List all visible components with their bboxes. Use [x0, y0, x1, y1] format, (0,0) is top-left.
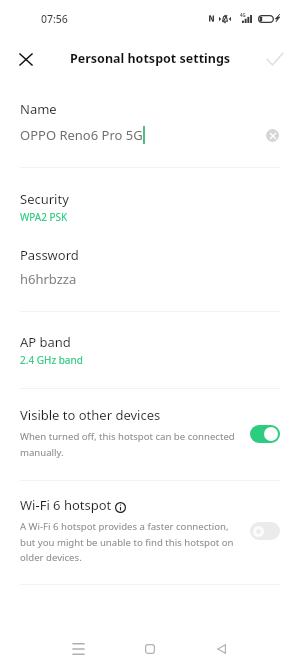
button[interactable]: Password [0, 230, 300, 311]
staticText: Security [20, 190, 69, 208]
staticText: A Wi-Fi 6 hotspot provides a faster conn… [20, 520, 238, 564]
button[interactable]: Wi-Fi 6 hotspot [0, 496, 300, 564]
staticText: Name [20, 100, 57, 118]
button[interactable]: Recents [58, 628, 99, 667]
staticText: OPPO Reno6 Pro 5G [20, 126, 143, 144]
button[interactable]: Clear name [262, 125, 283, 146]
staticText: Wi-Fi 6 hotspot [20, 496, 112, 514]
button[interactable]: Visible to other devices toggle [250, 425, 280, 443]
button[interactable]: Confirm [255, 39, 295, 79]
staticText: 07:56 [41, 12, 68, 26]
staticText: Visible to other devices [20, 406, 161, 424]
staticText: h6hrbzza [20, 270, 77, 288]
staticText: Personal hotspot settings [70, 50, 231, 67]
button[interactable]: Security [0, 174, 300, 230]
button[interactable]: Home [129, 628, 170, 667]
staticText: 4G [240, 12, 246, 18]
staticText: When turned off, this hotspot can be con… [20, 430, 238, 459]
button[interactable]: Wi-Fi 6 hotspot toggle [250, 522, 280, 540]
button[interactable]: Back [201, 628, 242, 667]
staticText: Password [20, 246, 79, 264]
staticText: WPA2 PSK [20, 210, 68, 224]
staticText: 2.4 GHz band [20, 353, 83, 367]
button[interactable]: OPPO Reno6 Pro 5G [0, 122, 300, 148]
staticText: AP band [20, 333, 71, 351]
button[interactable]: AP band [0, 312, 300, 388]
button[interactable]: Visible to other devices [0, 406, 300, 459]
button[interactable]: Close [6, 39, 46, 79]
